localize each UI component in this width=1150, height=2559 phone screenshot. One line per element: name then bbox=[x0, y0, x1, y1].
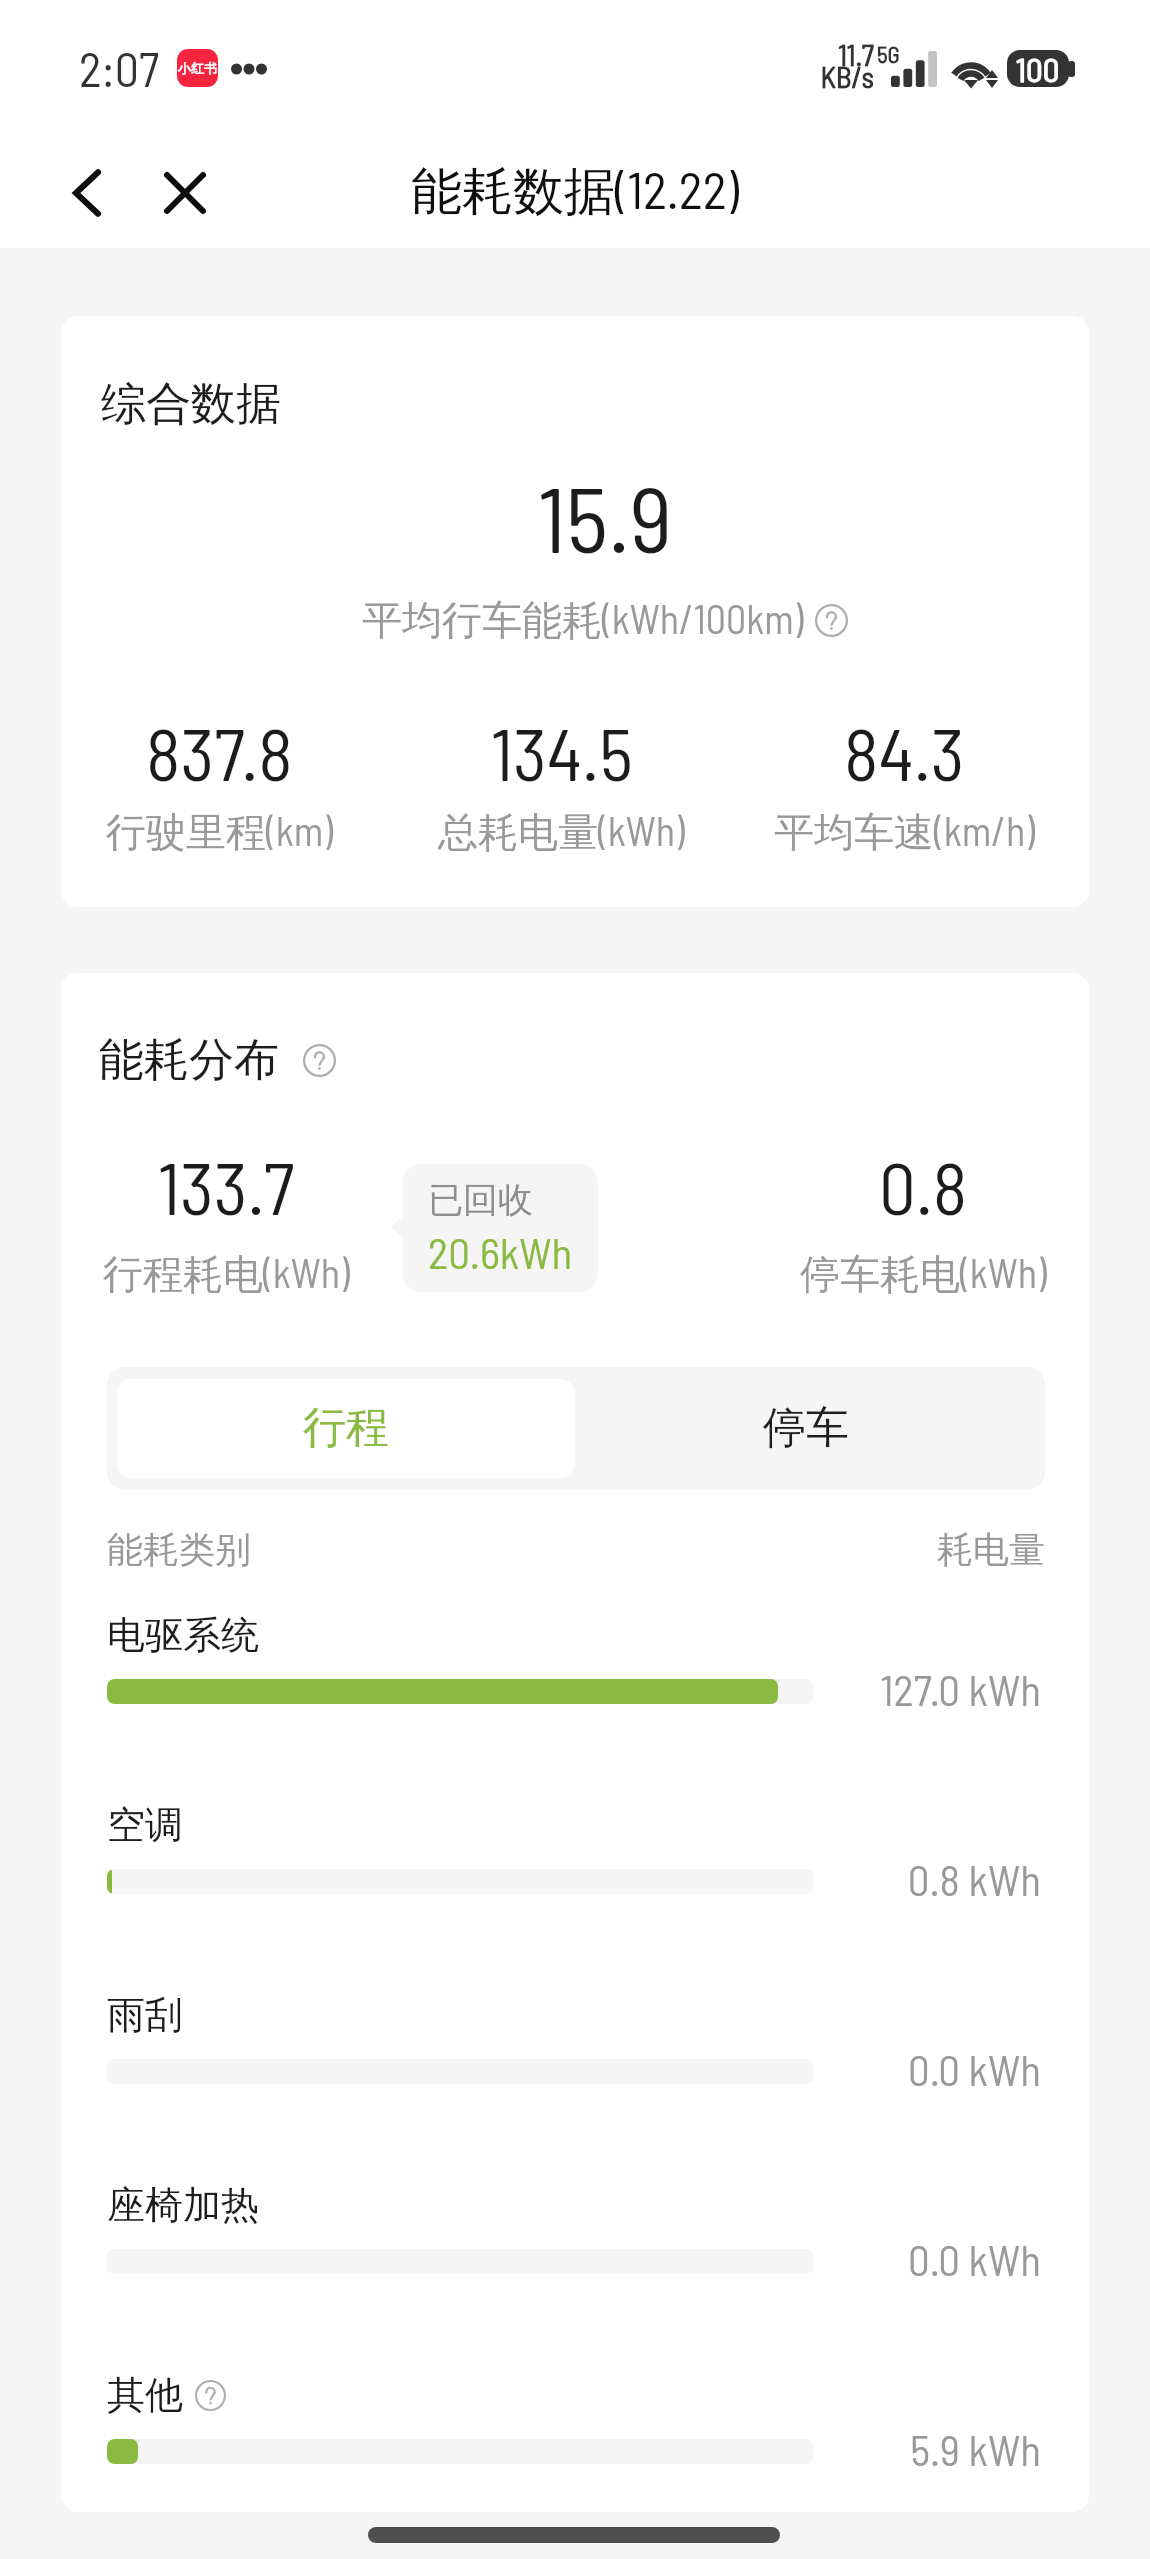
staticText: KB/s bbox=[0, 59, 874, 94]
staticText: 84.3 bbox=[844, 708, 965, 796]
staticText: 停车耗电(kWh) bbox=[800, 1248, 1047, 1300]
button[interactable]: Help bbox=[303, 1044, 336, 1077]
staticText: 100 bbox=[1016, 50, 1060, 86]
button[interactable]: 行程 bbox=[117, 1379, 575, 1478]
staticText: 15.9 bbox=[91, 461, 1089, 571]
staticText: 能耗类别 bbox=[107, 1527, 251, 1572]
staticText: 0.0 kWh bbox=[61, 2233, 1041, 2285]
button[interactable]: Help bbox=[815, 604, 848, 637]
staticText: 能耗数据(12.22) bbox=[0, 158, 1150, 224]
staticText: 综合数据 bbox=[101, 376, 281, 433]
staticText: 11.7 bbox=[0, 37, 874, 72]
staticText: 2:07 bbox=[79, 39, 160, 97]
staticText: 行驶里程(km) bbox=[106, 806, 333, 858]
staticText: 0.0 kWh bbox=[61, 2043, 1041, 2095]
button[interactable]: Help bbox=[195, 2380, 226, 2411]
button[interactable]: Close bbox=[136, 144, 234, 242]
staticText: 平均车速(km/h) bbox=[774, 806, 1035, 858]
staticText: 小红书 bbox=[178, 60, 217, 76]
staticText: 5G bbox=[877, 40, 900, 68]
staticText: 行程 bbox=[303, 1401, 389, 1455]
staticText: 耗电量 bbox=[61, 1527, 1045, 1572]
staticText: 133.7 bbox=[158, 1142, 295, 1230]
staticText: 已回收 bbox=[428, 1178, 533, 1222]
button[interactable]: Back bbox=[38, 144, 136, 242]
staticText: 5.9 kWh bbox=[61, 2423, 1041, 2475]
staticText: 134.5 bbox=[491, 708, 633, 796]
staticText: 0.8 kWh bbox=[61, 1853, 1041, 1905]
staticText: 总耗电量(kWh) bbox=[438, 806, 685, 858]
button[interactable]: 停车 bbox=[577, 1379, 1035, 1478]
staticText: 其他 bbox=[107, 2371, 183, 2419]
staticText: 电驱系统 bbox=[107, 1611, 259, 1659]
staticText: 0.8 bbox=[879, 1142, 968, 1230]
staticText: 空调 bbox=[107, 1801, 183, 1849]
staticText: 座椅加热 bbox=[107, 2181, 259, 2229]
staticText: 雨刮 bbox=[107, 1991, 183, 2039]
staticText: 127.0 kWh bbox=[61, 1663, 1041, 1715]
staticText: 平均行车能耗(kWh/100km) bbox=[362, 594, 804, 646]
staticText: 行程耗电(kWh) bbox=[103, 1248, 350, 1300]
staticText: 停车 bbox=[763, 1401, 849, 1455]
staticText: 20.6kWh bbox=[428, 1226, 573, 1278]
staticText: 837.8 bbox=[146, 708, 293, 796]
staticText: 能耗分布 bbox=[99, 1032, 279, 1089]
